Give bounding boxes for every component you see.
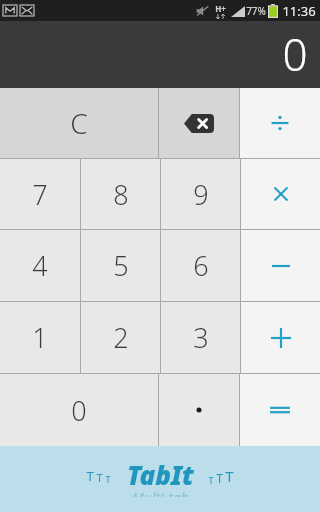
- button[interactable]: 9: [161, 159, 240, 229]
- staticText: T: [208, 474, 214, 486]
- button[interactable]: 8: [81, 159, 160, 229]
- staticText: 1: [32, 319, 48, 356]
- staticText: 7: [32, 176, 48, 213]
- button[interactable]: Minus: [241, 230, 320, 301]
- staticText: TabIt: [127, 457, 194, 492]
- staticText: 6: [193, 247, 209, 284]
- button[interactable]: 4: [0, 230, 80, 301]
- staticText: 5: [113, 247, 129, 284]
- staticText: T: [96, 470, 103, 485]
- button[interactable]: Plus: [241, 302, 320, 373]
- button[interactable]: 1: [0, 302, 80, 373]
- button[interactable]: 0: [0, 374, 158, 446]
- button[interactable]: 6: [161, 230, 240, 301]
- staticText: 9: [193, 176, 209, 213]
- staticText: T: [216, 470, 223, 486]
- staticText: 4: [32, 247, 48, 284]
- button[interactable]: Multiply: [241, 159, 320, 229]
- staticText: T: [86, 467, 94, 485]
- button[interactable]: TabIt Multi-tab: [0, 446, 320, 512]
- staticText: 3: [193, 319, 209, 356]
- staticText: 0: [71, 392, 87, 429]
- button[interactable]: 2: [81, 302, 160, 373]
- staticText: 8: [113, 176, 129, 213]
- button[interactable]: Equals: [240, 374, 320, 446]
- staticText: H+: [215, 3, 226, 14]
- staticText: C: [70, 104, 88, 142]
- staticText: Multi-tab: [132, 488, 189, 497]
- staticText: 77%: [246, 4, 266, 18]
- staticText: T: [105, 473, 111, 485]
- button[interactable]: Backspace: [159, 88, 239, 158]
- button[interactable]: 3: [161, 302, 240, 373]
- button[interactable]: 5: [81, 230, 160, 301]
- staticText: 0: [282, 24, 308, 84]
- staticText: 11:36: [282, 2, 316, 20]
- button[interactable]: Clear: [0, 88, 158, 158]
- button[interactable]: 7: [0, 159, 80, 229]
- button[interactable]: [159, 374, 239, 446]
- staticText: T: [225, 466, 234, 486]
- staticText: 2: [113, 319, 129, 356]
- button[interactable]: Divide: [240, 88, 320, 158]
